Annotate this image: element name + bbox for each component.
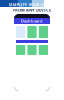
staticText: Dashboard <box>21 18 43 24</box>
staticText: FROM ANY DEVICE <box>13 7 51 13</box>
staticText: SIMPLIFY YOUR ONLINE <box>8 2 55 7</box>
